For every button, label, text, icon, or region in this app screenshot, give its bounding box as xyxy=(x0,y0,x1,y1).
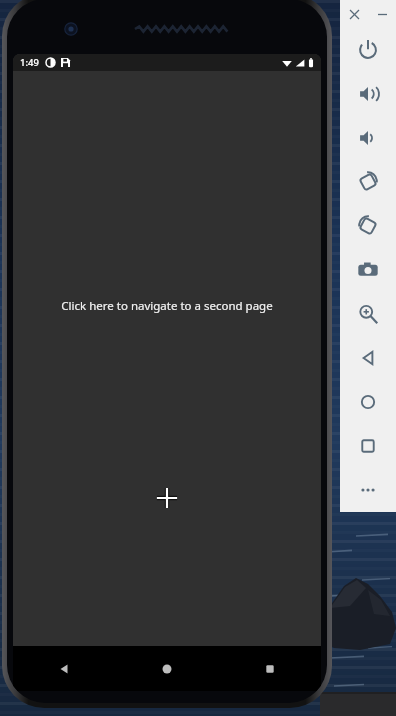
button[interactable]: Recent apps xyxy=(218,646,321,691)
button[interactable]: More xyxy=(346,468,390,512)
button[interactable]: Zoom xyxy=(346,292,390,336)
button[interactable]: Home xyxy=(346,380,390,424)
button[interactable]: Close xyxy=(340,0,368,28)
button[interactable]: Back xyxy=(13,646,115,691)
staticText: 1:49 xyxy=(20,56,39,69)
button[interactable]: Overview xyxy=(346,424,390,468)
button[interactable]: Rotate left xyxy=(346,160,390,204)
button[interactable]: Volume up xyxy=(346,72,390,116)
button[interactable]: Back xyxy=(346,336,390,380)
button[interactable]: Minimize xyxy=(368,0,396,28)
button[interactable]: Click here to navigate to a second page xyxy=(51,292,283,320)
button[interactable]: Home xyxy=(115,646,218,691)
button[interactable]: Power xyxy=(346,28,390,72)
staticText: Click here to navigate to a second page xyxy=(61,298,273,314)
button[interactable]: Take screenshot xyxy=(346,248,390,292)
button[interactable]: Rotate right xyxy=(346,204,390,248)
button[interactable]: Volume down xyxy=(346,116,390,160)
